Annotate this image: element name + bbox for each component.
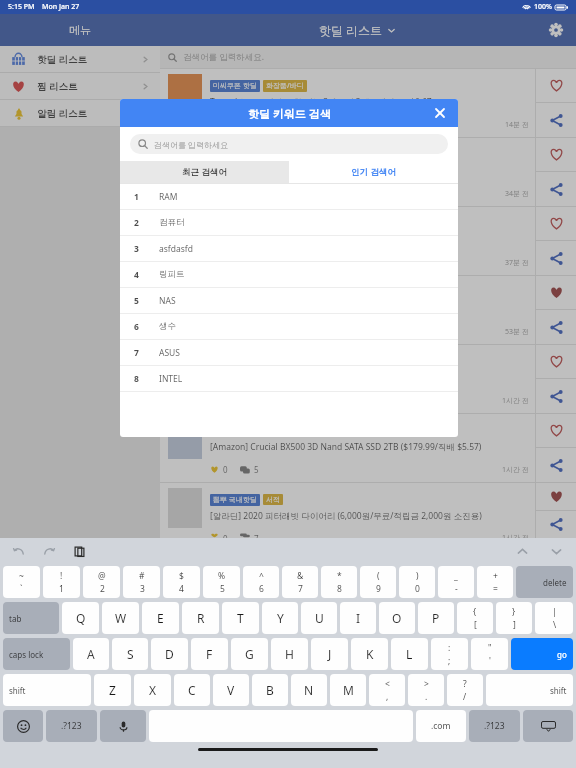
button[interactable]: 3 [120,236,458,261]
button[interactable]: tab [3,602,59,634]
button[interactable]: % [203,566,240,598]
button[interactable]: V [213,674,249,706]
button[interactable]: Share [536,241,576,275]
button[interactable]: A [73,638,109,670]
button[interactable]: X [134,674,171,706]
button[interactable]: Favorite [536,414,576,447]
button[interactable]: } [496,602,532,634]
button[interactable]: 찜 리스트 [0,73,160,99]
button[interactable]: caps lock [3,638,70,670]
button[interactable]: $ [163,566,200,598]
button[interactable]: C [174,674,210,706]
button[interactable]: Redo [40,542,58,560]
button[interactable]: Share [536,310,576,344]
button[interactable]: * [321,566,357,598]
button[interactable]: N [291,674,327,706]
button[interactable]: 4 [120,262,458,287]
button[interactable]: 미씨쿠폰 핫딜 [160,69,576,137]
button[interactable]: 6 [120,314,458,339]
button[interactable]: : [431,638,468,670]
button[interactable]: 7 [120,340,458,365]
button[interactable]: go [511,638,573,670]
button[interactable]: 뽐뿌 국내핫딜 [160,276,576,344]
button[interactable]: Y [262,602,298,634]
button[interactable]: Share [536,448,576,482]
button[interactable]: 인기 검색어 [289,161,458,183]
button[interactable]: F [191,638,228,670]
button[interactable]: delete [516,566,573,598]
button[interactable]: 1 [120,184,458,209]
button[interactable]: Favorite [536,345,576,378]
button[interactable]: Undo [10,542,28,560]
button[interactable]: 8 [120,366,458,391]
button[interactable]: D [151,638,188,670]
button[interactable]: E [142,602,179,634]
button[interactable]: .?123 [46,710,97,742]
button[interactable]: 검색어를 입력하세요 [130,134,448,154]
button[interactable]: ! [43,566,80,598]
button[interactable]: O [379,602,415,634]
button[interactable]: W [102,602,139,634]
button[interactable]: Previous field [512,541,532,561]
button[interactable]: L [391,638,428,670]
button[interactable]: 핫딜 리스트 [0,46,160,72]
button[interactable]: + [477,566,513,598]
button[interactable]: R [182,602,219,634]
button[interactable]: " [471,638,508,670]
button[interactable]: ~ [3,566,40,598]
button[interactable]: B [252,674,288,706]
button[interactable]: Paste [70,542,88,560]
button[interactable]: 2 [120,210,458,235]
button[interactable]: M [330,674,366,706]
button[interactable]: Favorite [536,207,576,240]
button[interactable]: I [340,602,376,634]
button[interactable]: ^ [243,566,279,598]
button[interactable]: Favorite [536,138,576,171]
button[interactable]: G [231,638,268,670]
button[interactable]: 5 [120,288,458,313]
button[interactable]: < [369,674,405,706]
button[interactable]: H [271,638,308,670]
button[interactable]: U [301,602,337,634]
button[interactable]: Q [62,602,99,634]
button[interactable]: Dictation [100,710,146,742]
button[interactable]: .?123 [469,710,520,742]
button[interactable]: 알림 리스트 [0,100,160,126]
button[interactable]: 뽐뿌 국내핫딜 [160,483,576,538]
button[interactable]: 최근 검색어 [120,161,289,183]
button[interactable]: Favorite [536,483,576,510]
button[interactable]: @ [83,566,120,598]
button[interactable]: Settings [546,20,566,40]
button[interactable]: 미씨쿠폰 핫딜 [160,345,576,413]
button[interactable]: shift [3,674,91,706]
button[interactable]: | [535,602,573,634]
button[interactable]: Favorite [536,69,576,102]
button[interactable]: Next field [546,541,566,561]
button[interactable]: shift [486,674,573,706]
button[interactable]: > [408,674,444,706]
button[interactable]: Share [536,379,576,413]
button[interactable]: P [418,602,454,634]
button[interactable]: { [457,602,493,634]
button[interactable]: T [222,602,259,634]
button[interactable]: K [351,638,388,670]
button[interactable]: ? [447,674,483,706]
button[interactable]: Z [94,674,131,706]
button[interactable]: Share [536,511,576,538]
button[interactable]: .com [416,710,466,742]
button[interactable]: ( [360,566,396,598]
button[interactable]: Close [432,105,448,121]
button[interactable]: J [311,638,348,670]
button[interactable]: Hide keyboard [523,710,573,742]
button[interactable]: 뽐뿌 해외핫딜 [160,207,576,275]
button[interactable]: ) [399,566,435,598]
button[interactable]: # [123,566,160,598]
button[interactable]: Emoji [3,710,43,742]
button[interactable]: S [112,638,148,670]
button[interactable]: 뽐뿌 해외핫딜 [160,414,576,482]
button[interactable]: 당근 해외핫딜 [160,138,576,206]
button[interactable]: Share [536,172,576,206]
button[interactable]: & [282,566,318,598]
button[interactable]: Share [536,103,576,137]
